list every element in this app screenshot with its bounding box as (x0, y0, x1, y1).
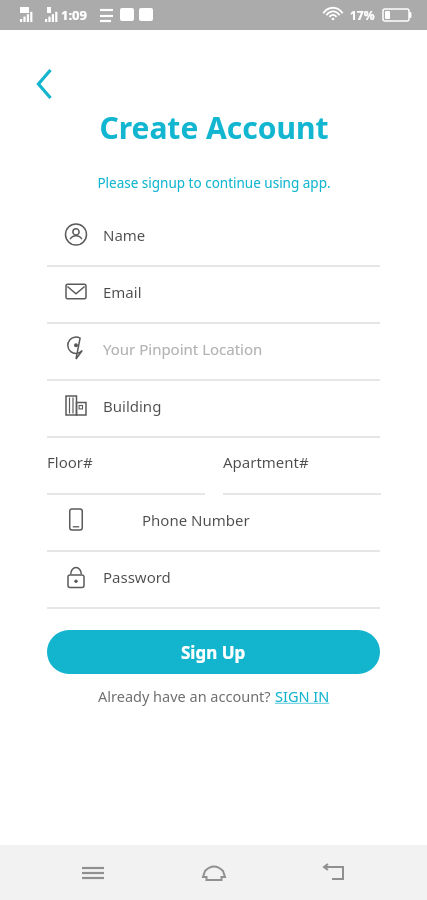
staticText: Floor# (47, 452, 93, 472)
button[interactable]: Back (26, 62, 70, 106)
button[interactable]: Recent apps (65, 845, 121, 900)
button[interactable]: SIGN IN (275, 686, 330, 706)
button[interactable]: Phone Number (47, 495, 380, 552)
staticText: 1:09 (61, 6, 87, 24)
staticText: Please signup to continue using app. (97, 174, 331, 192)
staticText: Apartment# (223, 452, 309, 472)
button[interactable]: Floor# (47, 438, 205, 495)
button[interactable]: Sign Up (47, 630, 380, 674)
button[interactable]: Home (186, 845, 242, 900)
button[interactable]: Email (47, 267, 380, 324)
button[interactable]: Building (47, 381, 380, 438)
staticText: Create Account (99, 107, 329, 148)
button[interactable]: Password (47, 552, 380, 609)
button[interactable]: Back (306, 845, 362, 900)
button[interactable]: Apartment# (223, 438, 381, 495)
staticText: Name (103, 225, 146, 245)
staticText: 17% (350, 7, 375, 23)
staticText: Sign Up (181, 641, 246, 664)
button[interactable]: Your Pinpoint Location (47, 324, 380, 381)
staticText: Your Pinpoint Location (103, 339, 263, 359)
staticText: Phone Number (142, 510, 250, 530)
staticText: Email (103, 282, 142, 302)
staticText: Already have an account? (98, 686, 275, 706)
staticText: SIGN IN (275, 686, 330, 706)
staticText: Password (103, 567, 171, 587)
button[interactable]: Name (47, 210, 380, 267)
staticText: Building (103, 396, 162, 416)
